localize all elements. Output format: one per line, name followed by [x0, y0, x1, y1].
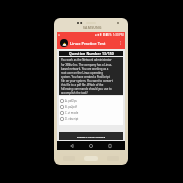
staticText: SAMSUNG: [83, 25, 102, 30]
staticText: C. vi mode: [65, 111, 79, 115]
button[interactable]: C. vi mode: [59, 110, 123, 116]
button[interactable]: A. pdf2ps: [59, 98, 123, 104]
button[interactable]: More options: [117, 40, 123, 46]
staticText: SUBMIT YOUR CHOICE: [77, 135, 106, 138]
button[interactable]: D. vbscript: [59, 116, 123, 122]
staticText: D. vbscript: [65, 117, 79, 121]
staticText: Linux Practice Test: [70, 41, 106, 46]
staticText: A. pdf2ps: [65, 99, 77, 103]
button[interactable]: Recents: [106, 142, 114, 150]
staticText: Question Number 13/150: [69, 51, 114, 56]
staticText: 85% 1:30 PM: [106, 33, 124, 37]
staticText: B. ps2pdf: [65, 105, 77, 109]
button[interactable]: SUBMIT YOUR CHOICE: [59, 132, 123, 140]
staticText: You work as the Network administrator fo…: [61, 58, 113, 94]
button[interactable]: Back: [68, 142, 76, 150]
button[interactable]: B. ps2pdf: [59, 104, 123, 110]
button[interactable]: Home: [87, 142, 95, 150]
